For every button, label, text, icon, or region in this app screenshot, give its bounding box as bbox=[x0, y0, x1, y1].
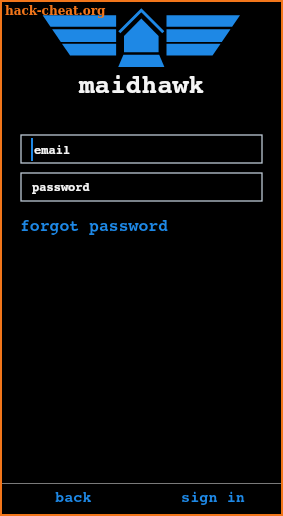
button[interactable]: password bbox=[21, 173, 262, 201]
staticText: password bbox=[32, 180, 90, 194]
button[interactable]: email bbox=[21, 135, 262, 163]
button[interactable]: sign in bbox=[145, 482, 281, 513]
staticText: sign in bbox=[181, 489, 246, 507]
staticText: maidhawk bbox=[2, 70, 281, 101]
button[interactable]: back bbox=[2, 482, 145, 513]
staticText: hack-cheat.org bbox=[5, 4, 106, 18]
button[interactable]: forgot password bbox=[20, 217, 169, 236]
staticText: back bbox=[55, 489, 92, 507]
staticText: forgot password bbox=[20, 217, 169, 236]
staticText: email bbox=[34, 143, 71, 157]
